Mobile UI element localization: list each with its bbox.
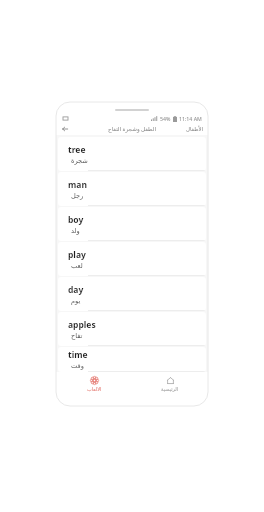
button[interactable]: play	[58, 242, 206, 276]
staticText: يوم	[71, 297, 81, 305]
staticText: لعب	[71, 262, 83, 270]
staticText: رجل	[71, 192, 84, 200]
staticText: شجرة	[71, 157, 88, 165]
staticText: 11:14 AM	[179, 115, 202, 122]
staticText: play	[68, 249, 86, 261]
staticText: وقت	[71, 362, 84, 370]
staticText: الطفل وشجرة التفاح	[108, 125, 156, 133]
button[interactable]: man	[58, 172, 206, 206]
staticText: الرئيسية	[161, 386, 179, 392]
staticText: apples	[68, 319, 96, 331]
button[interactable]: tree	[58, 137, 206, 171]
staticText: 54%	[160, 115, 171, 122]
button[interactable]: boy	[58, 207, 206, 241]
staticText: boy	[68, 214, 84, 226]
staticText: man	[68, 179, 87, 191]
button[interactable]: الأطفال	[186, 126, 204, 132]
button[interactable]: apples	[58, 312, 206, 346]
staticText: ولد	[71, 227, 80, 235]
button[interactable]: Back	[60, 124, 70, 134]
button[interactable]: time	[58, 347, 206, 372]
staticText: الالعاب	[87, 386, 102, 392]
button[interactable]: الالعاب	[56, 372, 132, 394]
staticText: time	[68, 349, 88, 361]
button[interactable]: الرئيسية	[132, 372, 208, 394]
staticText: الأطفال	[186, 126, 204, 132]
button[interactable]: day	[58, 277, 206, 311]
staticText: tree	[68, 144, 86, 156]
staticText: day	[68, 284, 84, 296]
staticText: تفاح	[71, 332, 83, 340]
